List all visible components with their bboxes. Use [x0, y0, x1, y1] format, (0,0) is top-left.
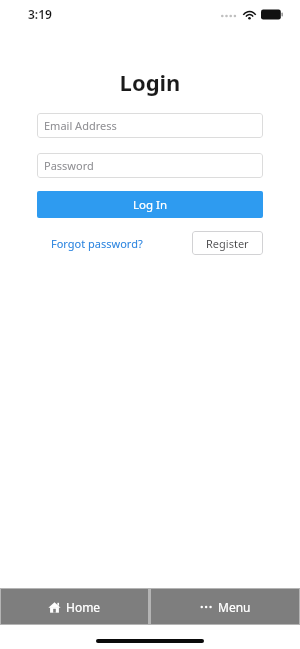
staticText: Home: [66, 599, 101, 615]
button[interactable]: Password: [37, 153, 263, 178]
staticText: Password: [44, 158, 94, 173]
button[interactable]: Forgot password?: [51, 236, 143, 251]
button[interactable]: Email Address: [37, 113, 263, 138]
staticText: Menu: [218, 599, 251, 615]
staticText: Log In: [133, 197, 168, 213]
staticText: Register: [206, 236, 249, 251]
staticText: 3:19: [28, 6, 52, 22]
button[interactable]: Home: [1, 589, 148, 624]
button[interactable]: Log In: [37, 191, 263, 218]
staticText: Email Address: [44, 118, 117, 133]
button[interactable]: Register: [192, 231, 263, 255]
staticText: Login: [0, 67, 300, 97]
staticText: Forgot password?: [51, 236, 143, 251]
button[interactable]: Menu: [151, 589, 299, 624]
